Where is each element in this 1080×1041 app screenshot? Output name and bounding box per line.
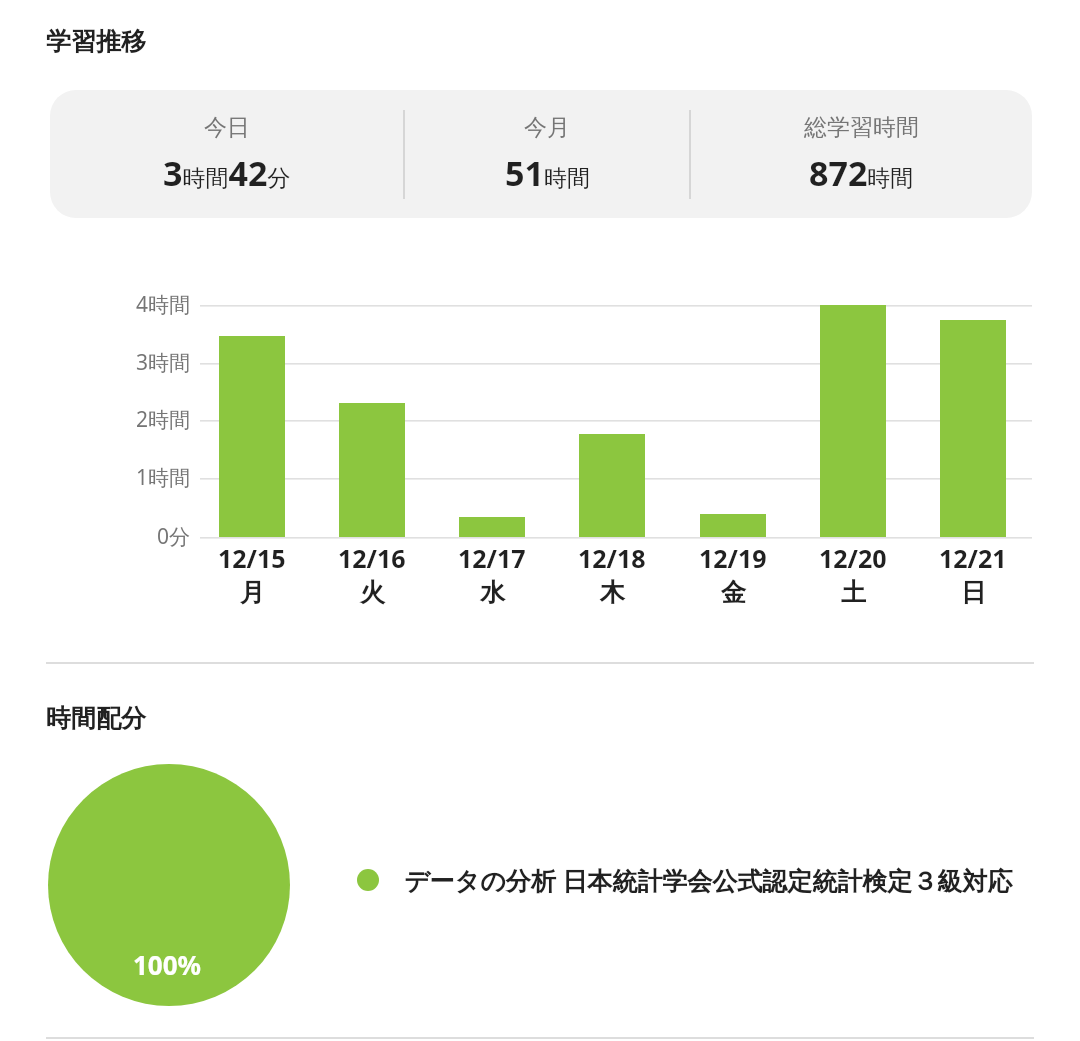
- button[interactable]: 今日: [50, 113, 403, 196]
- button[interactable]: 12/19: [673, 541, 793, 608]
- staticText: 2時間: [136, 405, 191, 434]
- staticText: 総学習時間: [804, 113, 919, 142]
- staticText: 1時間: [136, 463, 191, 492]
- staticText: データの分析 日本統計学会公式認定統計検定３級対応: [404, 863, 1013, 897]
- button[interactable]: 12/18: [552, 541, 672, 608]
- staticText: 土: [841, 577, 866, 608]
- staticText: 0分: [157, 522, 191, 551]
- staticText: 火: [360, 577, 385, 608]
- button[interactable]: 12/20: [793, 541, 913, 608]
- staticText: 12/16: [338, 541, 406, 575]
- staticText: 日: [961, 577, 986, 608]
- staticText: 51時間: [505, 150, 590, 196]
- staticText: 4時間: [136, 290, 191, 319]
- staticText: 木: [600, 577, 625, 608]
- button[interactable]: 12/15: [192, 541, 312, 608]
- button[interactable]: 総学習時間: [691, 113, 1032, 196]
- staticText: 月: [240, 577, 265, 608]
- staticText: 3時間42分: [163, 150, 291, 196]
- button[interactable]: 今日: [50, 90, 1032, 218]
- staticText: 12/15: [218, 541, 286, 575]
- button[interactable]: 時間配分 円グラフ: [48, 764, 290, 1006]
- staticText: 3時間: [136, 348, 191, 377]
- button[interactable]: 12/21: [913, 541, 1033, 608]
- button[interactable]: データの分析 日本統計学会公式認定統計検定３級対応: [356, 855, 1013, 905]
- button[interactable]: 12/16: [312, 541, 432, 608]
- staticText: 時間配分: [46, 703, 146, 734]
- staticText: 水: [480, 577, 505, 608]
- staticText: 12/18: [578, 541, 646, 575]
- staticText: 今日: [204, 113, 250, 142]
- staticText: 12/20: [819, 541, 887, 575]
- staticText: 学習推移: [46, 26, 146, 57]
- staticText: 100%: [133, 947, 202, 982]
- staticText: 12/17: [458, 541, 526, 575]
- staticText: 12/21: [939, 541, 1007, 575]
- staticText: 金: [721, 577, 746, 608]
- staticText: 今月: [524, 113, 570, 142]
- staticText: 12/19: [699, 541, 767, 575]
- staticText: 872時間: [809, 150, 914, 196]
- button[interactable]: 今月: [405, 113, 689, 196]
- button[interactable]: 12/17: [432, 541, 552, 608]
